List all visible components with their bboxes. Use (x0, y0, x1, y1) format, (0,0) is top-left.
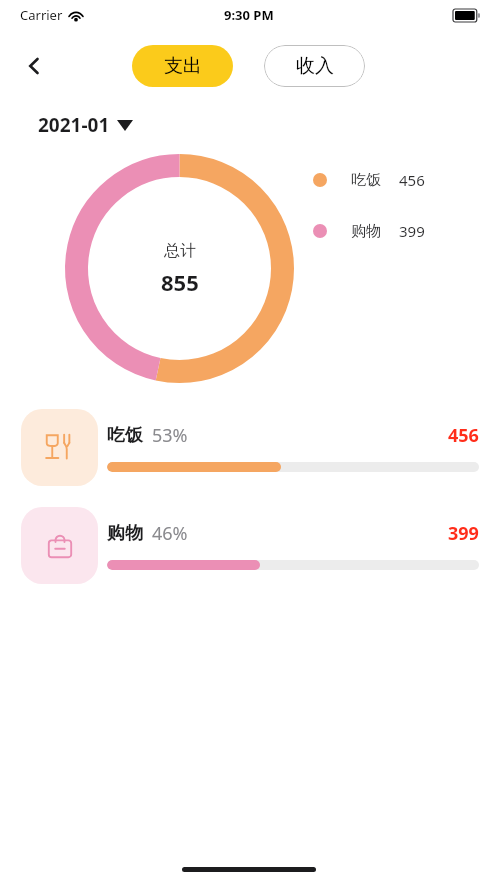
button[interactable]: Back (14, 46, 54, 86)
button[interactable]: 吃饭 (313, 170, 425, 190)
staticText: 9:30 PM (224, 6, 274, 24)
staticText: 购物 (107, 522, 143, 545)
staticText: 46% (152, 521, 188, 546)
staticText: 855 (161, 267, 199, 297)
staticText: 399 (399, 221, 425, 241)
staticText: 456 (399, 170, 425, 190)
staticText: 吃饭 (351, 171, 381, 190)
staticText: 456 (448, 423, 479, 448)
button[interactable]: 2021-01 (34, 108, 137, 142)
button[interactable]: 购物 (0, 507, 497, 584)
staticText: 购物 (351, 222, 381, 241)
staticText: 吃饭 (107, 424, 143, 447)
staticText: Carrier (20, 6, 63, 24)
staticText: 399 (448, 521, 479, 546)
staticText: 收入 (296, 54, 334, 78)
staticText: 2021-01 (38, 112, 110, 138)
button[interactable]: 购物 (313, 221, 425, 241)
staticText: 53% (152, 423, 188, 448)
button[interactable]: 吃饭 (0, 409, 497, 486)
button[interactable]: 支出 (132, 45, 233, 87)
staticText: 支出 (164, 54, 202, 78)
button[interactable]: 收入 (264, 45, 365, 87)
staticText: 总计 (164, 241, 196, 261)
